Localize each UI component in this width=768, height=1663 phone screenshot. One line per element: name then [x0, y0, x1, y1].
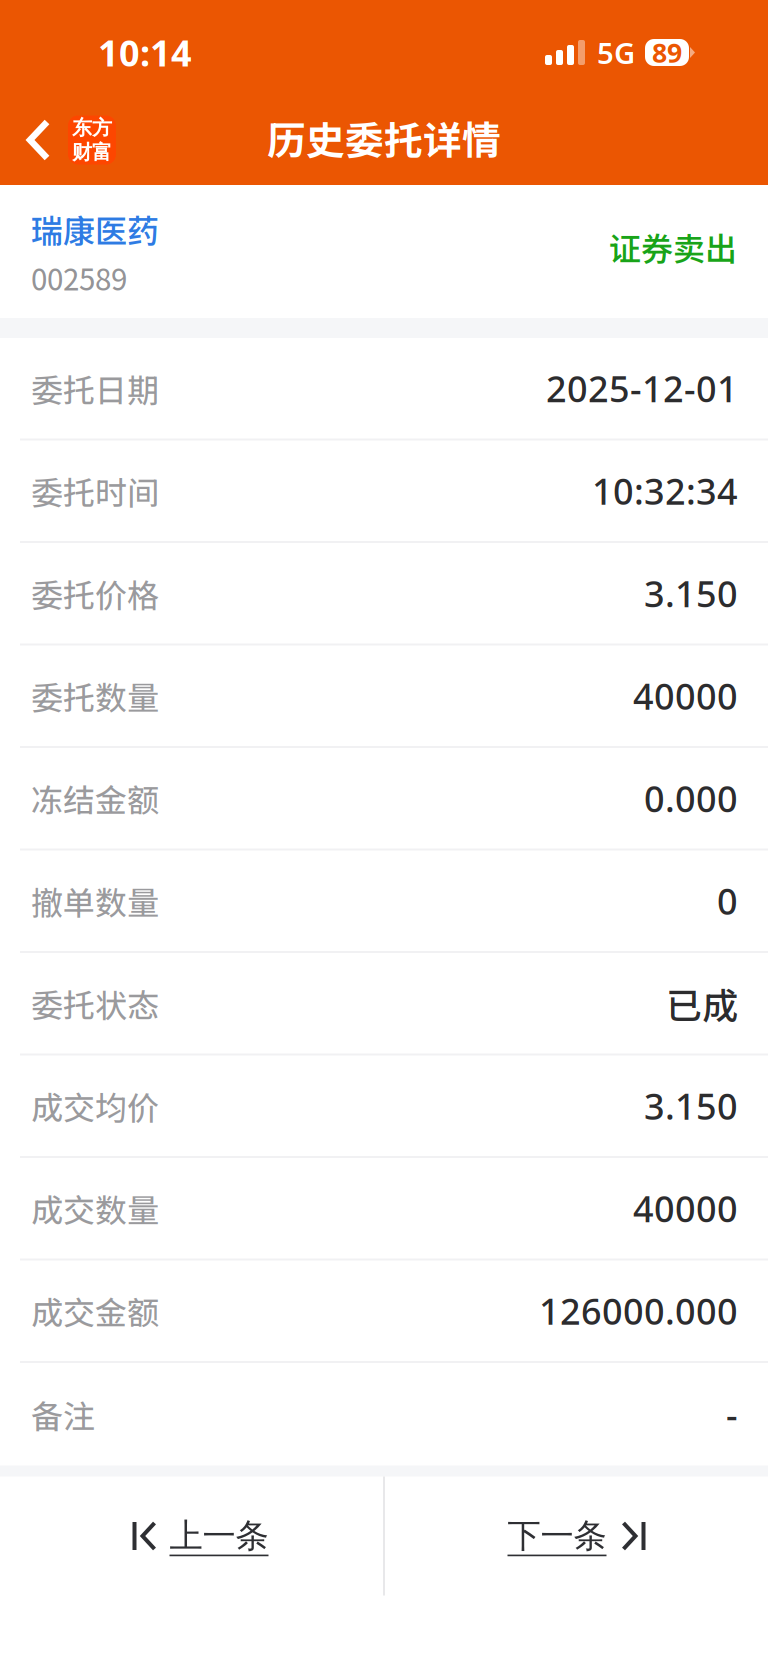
staticText: 126000.000 — [539, 1287, 738, 1335]
staticText: 委托状态 — [31, 980, 159, 1026]
staticText: 委托数量 — [31, 673, 159, 719]
staticText: 财富 — [72, 140, 112, 165]
staticText: 已成 — [666, 977, 738, 1029]
staticText: 东方 — [72, 115, 112, 140]
staticText: 002589 — [31, 256, 127, 299]
staticText: 委托时间 — [31, 468, 159, 514]
staticText: 3.150 — [644, 569, 738, 617]
staticText: 89 — [652, 35, 682, 70]
staticText: 冻结金额 — [31, 775, 159, 821]
staticText: 0.000 — [644, 774, 738, 822]
staticText: 历史委托详情 — [267, 110, 501, 166]
staticText: 3.150 — [644, 1082, 738, 1130]
staticText: 委托日期 — [31, 365, 159, 411]
staticText: 40000 — [633, 672, 738, 720]
staticText: 10:14 — [98, 29, 192, 76]
staticText: 备注 — [31, 1391, 95, 1437]
staticText: 证券卖出 — [609, 224, 737, 270]
staticText: 瑞康医药 — [31, 206, 159, 252]
staticText: 下一条 — [507, 1515, 606, 1556]
staticText: 委托价格 — [31, 570, 159, 616]
staticText: 成交金额 — [31, 1288, 159, 1334]
staticText: 上一条 — [169, 1515, 268, 1556]
button[interactable]: 返回 — [0, 95, 134, 185]
button[interactable]: 下一条 — [385, 1476, 768, 1595]
staticText: 成交数量 — [31, 1185, 159, 1231]
staticText: - — [726, 1390, 738, 1438]
button[interactable]: 上一条 — [0, 1476, 383, 1595]
staticText: 成交均价 — [31, 1083, 159, 1129]
staticText: 0 — [717, 877, 738, 925]
staticText: 2025-12-01 — [546, 364, 738, 412]
staticText: 5G — [597, 33, 635, 72]
staticText: 10:32:34 — [592, 467, 738, 515]
staticText: 撤单数量 — [31, 878, 159, 924]
staticText: 40000 — [633, 1184, 738, 1232]
